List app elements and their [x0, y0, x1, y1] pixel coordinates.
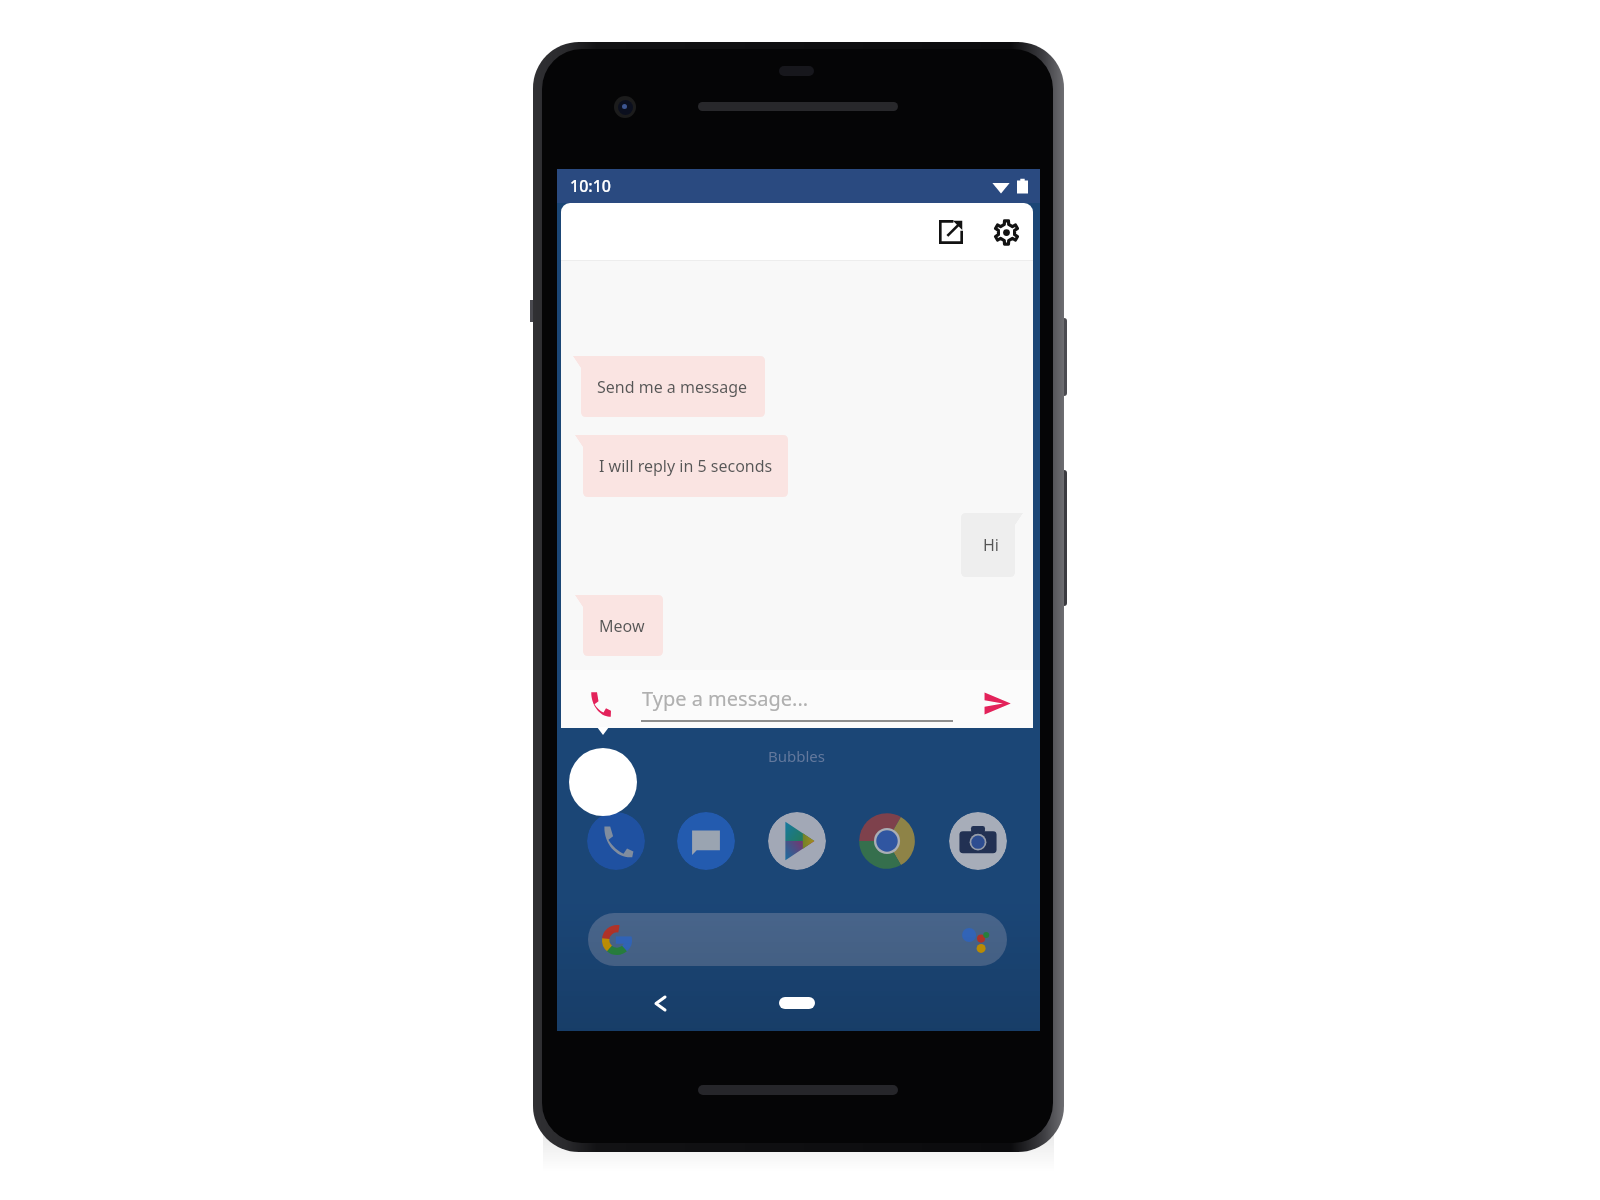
button[interactable]: Meow: [575, 595, 663, 656]
button[interactable]: Bubble avatar: [569, 748, 637, 816]
button[interactable]: Send: [975, 681, 1019, 725]
button[interactable]: Messages: [677, 812, 735, 870]
staticText: Hi: [983, 534, 999, 556]
button[interactable]: Call: [578, 684, 618, 724]
staticText: I will reply in 5 seconds: [599, 455, 773, 477]
button[interactable]: Hi: [961, 513, 1023, 577]
staticText: Type a message...: [642, 685, 809, 712]
button[interactable]: Chrome: [858, 812, 916, 870]
button[interactable]: Home: [779, 997, 815, 1009]
button[interactable]: Search: [588, 913, 1007, 966]
staticText: Meow: [599, 615, 645, 637]
button[interactable]: Camera: [949, 812, 1007, 870]
button[interactable]: Send me a message: [573, 356, 765, 417]
button[interactable]: Settings: [983, 209, 1029, 255]
staticText: Send me a message: [597, 376, 748, 398]
button[interactable]: Phone: [587, 812, 645, 870]
button[interactable]: Back: [647, 990, 673, 1016]
button[interactable]: Play Store: [768, 812, 826, 870]
button[interactable]: I will reply in 5 seconds: [575, 435, 788, 497]
button[interactable]: Open in new window: [928, 209, 974, 255]
staticText: Bubbles: [768, 746, 825, 766]
staticText: 10:10: [570, 175, 611, 197]
